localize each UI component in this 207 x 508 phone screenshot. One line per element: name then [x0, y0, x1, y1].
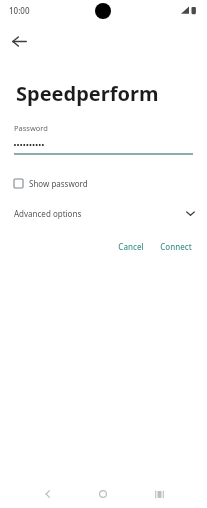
- button[interactable]: Back: [40, 486, 56, 502]
- staticText: 10:00: [9, 5, 30, 16]
- button[interactable]: Home: [95, 486, 111, 502]
- staticText: Show password: [29, 178, 88, 189]
- button[interactable]: Cancel: [113, 238, 149, 255]
- button[interactable]: Advanced options: [0, 202, 207, 224]
- staticText: Advanced options: [14, 208, 82, 219]
- button[interactable]: Show password: [10, 173, 96, 193]
- staticText: Cancel: [118, 241, 144, 252]
- button[interactable]: Back: [4, 26, 34, 56]
- staticText: Connect: [160, 241, 192, 252]
- button[interactable]: Recent apps: [151, 486, 167, 502]
- button[interactable]: Connect: [155, 238, 197, 255]
- staticText: Speedperform: [16, 80, 159, 107]
- staticText: Password: [14, 123, 48, 133]
